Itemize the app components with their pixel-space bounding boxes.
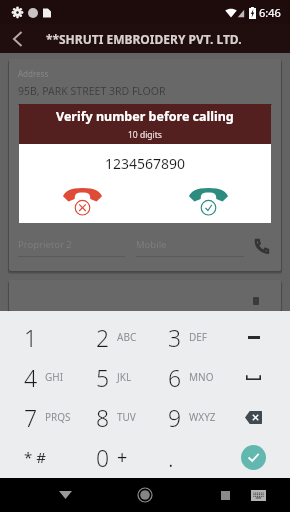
- button[interactable]: 9: [144, 397, 217, 437]
- button[interactable]: Cancel: [19, 188, 145, 223]
- staticText: TUV: [117, 410, 136, 424]
- staticText: 6: [168, 362, 182, 393]
- button[interactable]: Backspace: [217, 397, 290, 437]
- button[interactable]: Done: [241, 445, 266, 470]
- button[interactable]: Hide keyboard: [48, 478, 82, 512]
- staticText: 3: [168, 322, 182, 353]
- staticText: 7: [24, 402, 38, 433]
- staticText: 1234567890: [105, 154, 186, 173]
- staticText: 10 digits: [128, 129, 162, 141]
- button[interactable]: Recent apps: [208, 478, 242, 512]
- other: Backspace: [245, 411, 262, 424]
- button[interactable]: Home: [128, 478, 162, 512]
- staticText: 0: [96, 442, 110, 473]
- staticText: 4: [24, 362, 38, 393]
- staticText: 6:46: [259, 5, 281, 20]
- button[interactable]: Call: [249, 294, 263, 308]
- button[interactable]: 8: [72, 397, 144, 437]
- staticText: **SHRUTI EMBROIDERY PVT. LTD.: [46, 31, 242, 47]
- button[interactable]: Call: [145, 188, 271, 223]
- staticText: DEF: [189, 330, 208, 344]
- staticText: WXYZ: [189, 410, 216, 424]
- staticText: Address: [18, 68, 49, 79]
- button[interactable]: 2: [72, 317, 144, 357]
- button[interactable]: 6: [144, 357, 217, 397]
- button[interactable]: Done: [217, 437, 290, 477]
- staticText: 9: [168, 402, 182, 433]
- staticText: 8: [96, 402, 110, 433]
- staticText: ABC: [117, 330, 137, 344]
- staticText: 5: [96, 362, 110, 393]
- staticText: Mobile: [136, 238, 167, 251]
- staticText: GHI: [45, 370, 64, 384]
- staticText: JKL: [117, 370, 132, 384]
- staticText: 1: [24, 322, 38, 353]
- staticText: 95B, PARK STREET 3RD FLOOR: [18, 84, 166, 98]
- button[interactable]: 7: [0, 397, 72, 437]
- staticText: .: [168, 442, 174, 473]
- button[interactable]: Switch keyboard: [241, 478, 275, 512]
- button[interactable]: [217, 317, 290, 357]
- button[interactable]: .: [144, 437, 217, 477]
- button[interactable]: * #: [0, 437, 72, 477]
- staticText: 2: [96, 322, 110, 353]
- staticText: Verify number before calling: [56, 108, 234, 125]
- button[interactable]: 4: [0, 357, 72, 397]
- button[interactable]: [217, 357, 290, 397]
- button[interactable]: 3: [144, 317, 217, 357]
- button[interactable]: Back: [0, 24, 34, 53]
- staticText: * #: [24, 447, 46, 467]
- staticText: Proprietor 2: [18, 238, 72, 251]
- staticText: PRQS: [45, 410, 71, 424]
- staticText: MNO: [189, 370, 214, 384]
- button[interactable]: Call: [250, 235, 272, 257]
- staticText: +: [117, 445, 128, 470]
- button[interactable]: 5: [72, 357, 144, 397]
- button[interactable]: 0: [72, 437, 144, 477]
- button[interactable]: 1: [0, 317, 72, 357]
